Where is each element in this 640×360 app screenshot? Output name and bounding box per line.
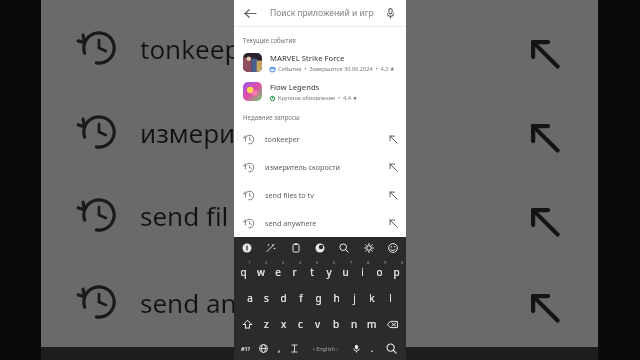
button[interactable]: send files to tv: [234, 181, 406, 209]
other: Insert query: [389, 191, 398, 200]
button[interactable]: Keyboard tool 6: [361, 240, 377, 256]
staticText: b: [333, 317, 340, 331]
button[interactable]: k: [363, 285, 381, 311]
button[interactable]: Keyboard tool 5: [336, 240, 352, 256]
staticText: 9: [384, 260, 387, 265]
staticText: 6: [333, 260, 336, 265]
staticText: y: [326, 265, 332, 279]
staticText: ‹ English ›: [313, 345, 338, 352]
staticText: o: [376, 265, 383, 279]
staticText: q: [240, 265, 247, 279]
staticText: w: [257, 265, 265, 279]
staticText: Поиск приложений и игр: [270, 7, 374, 19]
staticText: a: [247, 291, 253, 305]
staticText: n: [351, 317, 358, 331]
button[interactable]: Voice input: [348, 337, 365, 360]
button[interactable]: Back: [241, 4, 259, 22]
button[interactable]: j: [345, 285, 363, 311]
button[interactable]: Language: [255, 337, 272, 360]
button[interactable]: s: [258, 285, 275, 311]
button[interactable]: ‹ English ›: [303, 337, 348, 360]
button[interactable]: e: [269, 259, 286, 285]
button[interactable]: g: [309, 285, 327, 311]
staticText: t: [310, 265, 314, 279]
button[interactable]: Keyboard tool 7: [385, 240, 401, 256]
button[interactable]: w: [252, 259, 269, 285]
staticText: send an: [140, 285, 237, 320]
button[interactable]: Keyboard tool 3: [288, 240, 304, 256]
staticText: измери: [140, 115, 236, 150]
button[interactable]: #1?: [237, 337, 255, 360]
button[interactable]: Поиск приложений и игр: [270, 7, 381, 19]
staticText: .: [371, 343, 374, 354]
button[interactable]: MARVEL Strike Force: [234, 48, 406, 77]
staticText: tonkeeper: [265, 134, 389, 144]
staticText: f: [299, 291, 303, 305]
staticText: MARVEL Strike Force: [270, 53, 345, 63]
staticText: g: [315, 291, 322, 305]
button[interactable]: y: [320, 259, 337, 285]
button[interactable]: t: [303, 259, 320, 285]
staticText: Flow Legends: [270, 82, 320, 92]
staticText: ,: [278, 343, 281, 354]
staticText: Текущие события: [243, 36, 296, 44]
button[interactable]: Backspace: [381, 311, 404, 337]
button[interactable]: h: [327, 285, 345, 311]
staticText: 7: [350, 260, 353, 265]
button[interactable]: Keyboard tool 4: [312, 240, 328, 256]
staticText: e: [275, 265, 281, 279]
button[interactable]: d: [275, 285, 292, 311]
other: Insert query: [389, 163, 398, 172]
staticText: j: [353, 291, 356, 305]
button[interactable]: c: [292, 311, 309, 337]
button[interactable]: Search: [379, 337, 403, 360]
staticText: 1: [248, 260, 251, 265]
button[interactable]: a: [241, 285, 258, 311]
staticText: 3: [282, 260, 285, 265]
staticText: send anywhere: [265, 218, 389, 228]
staticText: c: [298, 317, 303, 331]
staticText: h: [333, 291, 340, 305]
button[interactable]: .: [365, 337, 379, 360]
staticText: 2: [265, 260, 268, 265]
staticText: tonkeeper: [140, 31, 266, 66]
staticText: v: [315, 317, 321, 331]
staticText: #1?: [241, 345, 251, 352]
button[interactable]: send anywhere: [234, 209, 406, 237]
staticText: d: [280, 291, 287, 305]
button[interactable]: ,: [272, 337, 286, 360]
staticText: send files to tv: [265, 190, 389, 200]
staticText: r: [292, 265, 297, 279]
button[interactable]: Shift: [236, 311, 258, 337]
button[interactable]: q: [235, 259, 252, 285]
button[interactable]: r: [286, 259, 303, 285]
staticText: z: [264, 317, 269, 331]
button[interactable]: o: [371, 259, 388, 285]
button[interactable]: x: [275, 311, 292, 337]
button[interactable]: p: [388, 259, 405, 285]
button[interactable]: m: [363, 311, 381, 337]
staticText: u: [342, 265, 349, 279]
button[interactable]: f: [292, 285, 309, 311]
button[interactable]: Text cursor: [286, 337, 303, 360]
staticText: i: [361, 265, 364, 279]
staticText: k: [369, 291, 375, 305]
button[interactable]: Keyboard tool 1: [239, 240, 255, 256]
button[interactable]: u: [337, 259, 354, 285]
button[interactable]: Voice search: [381, 4, 399, 22]
button[interactable]: l: [381, 285, 399, 311]
button[interactable]: n: [345, 311, 363, 337]
button[interactable]: b: [327, 311, 345, 337]
staticText: x: [281, 317, 287, 331]
staticText: измеритель скорости: [265, 162, 389, 172]
button[interactable]: v: [309, 311, 327, 337]
button[interactable]: измеритель скорости: [234, 153, 406, 181]
button[interactable]: Keyboard tool 2: [263, 240, 279, 256]
staticText: s: [264, 291, 269, 305]
button[interactable]: Flow Legends: [234, 77, 406, 106]
button[interactable]: tonkeeper: [234, 125, 406, 153]
other: Insert query: [389, 219, 398, 228]
button[interactable]: i: [354, 259, 371, 285]
button[interactable]: z: [258, 311, 275, 337]
staticText: send fil: [140, 198, 229, 233]
